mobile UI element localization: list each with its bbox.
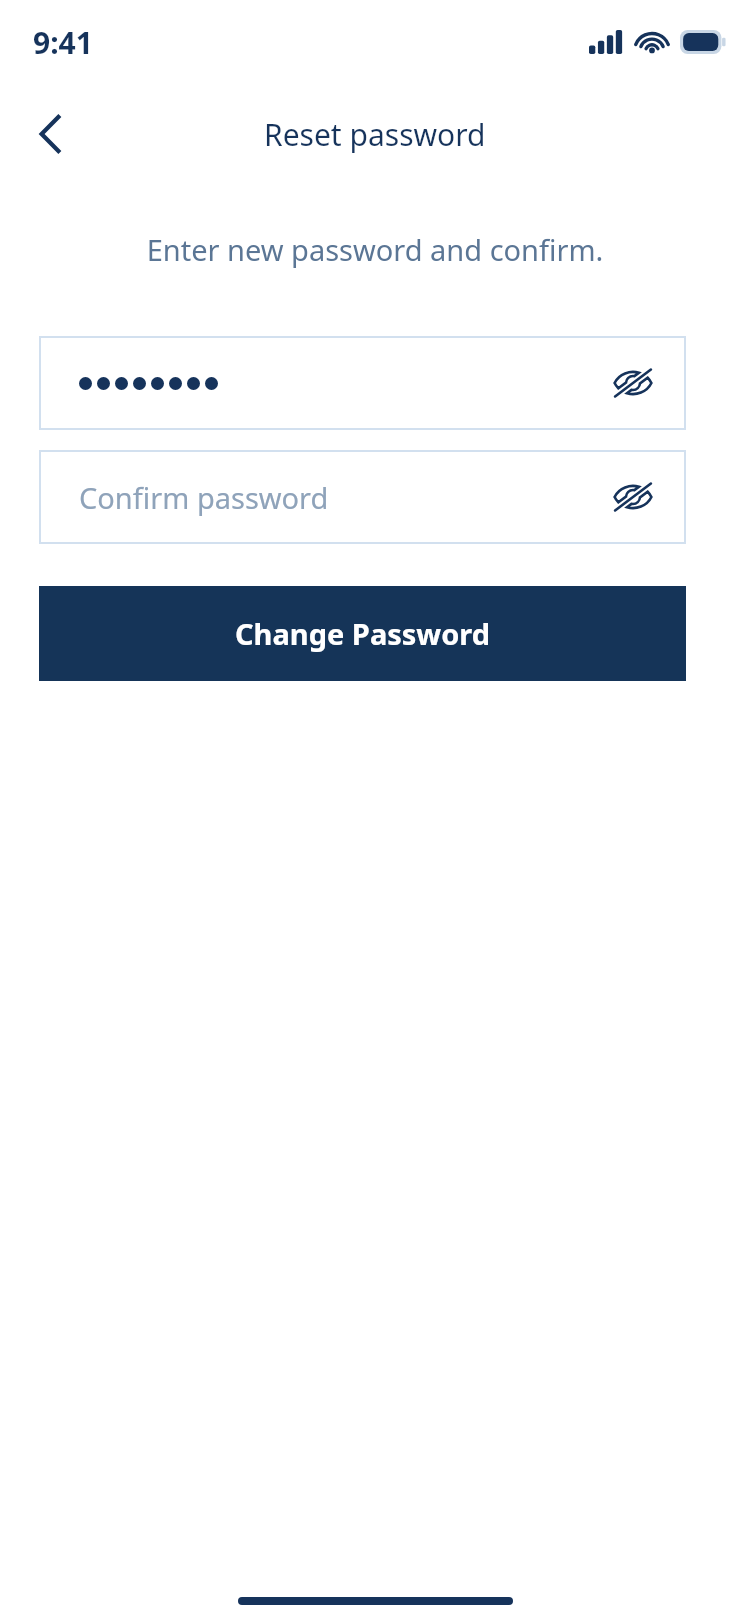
staticText: Reset password bbox=[264, 114, 486, 155]
button[interactable]: Confirm password bbox=[39, 450, 686, 544]
staticText: Confirm password bbox=[79, 478, 329, 517]
staticText: Change Password bbox=[235, 614, 491, 653]
staticText: 9:41 bbox=[33, 22, 93, 63]
button[interactable]: Back bbox=[16, 100, 84, 168]
button[interactable]: Hide password bbox=[39, 336, 686, 430]
button[interactable]: Change Password bbox=[39, 586, 686, 681]
staticText: Enter new password and confirm. bbox=[0, 230, 750, 269]
button[interactable]: Hide confirm password bbox=[602, 466, 664, 528]
button[interactable]: Hide password bbox=[602, 352, 664, 414]
